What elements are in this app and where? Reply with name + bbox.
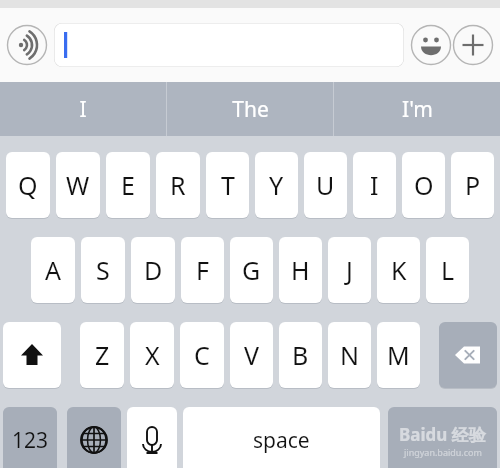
staticText: Y — [269, 168, 284, 202]
button[interactable]: J — [328, 237, 371, 303]
button[interactable]: G — [230, 237, 273, 303]
button[interactable]: Shift — [3, 322, 61, 388]
button[interactable]: F — [181, 237, 224, 303]
button[interactable]: C — [180, 322, 224, 388]
button[interactable]: Q — [6, 152, 50, 218]
staticText: Q — [18, 168, 38, 202]
staticText: T — [221, 168, 235, 202]
staticText: I — [370, 168, 379, 202]
button[interactable]: X — [130, 322, 174, 388]
staticText: J — [346, 253, 353, 287]
button[interactable]: Return — [388, 407, 497, 468]
button[interactable]: space — [183, 407, 380, 468]
button[interactable]: N — [328, 322, 371, 388]
button[interactable]: V — [230, 322, 273, 388]
button[interactable]: Z — [80, 322, 124, 388]
staticText: D — [144, 253, 163, 287]
button[interactable]: S — [81, 237, 125, 303]
staticText: G — [242, 253, 261, 287]
staticText: R — [170, 168, 186, 202]
button[interactable]: I'm — [334, 82, 500, 136]
staticText: The — [232, 95, 269, 124]
button[interactable]: H — [279, 237, 322, 303]
staticText: 123 — [12, 426, 49, 455]
button[interactable]: L — [426, 237, 469, 303]
button[interactable]: U — [304, 152, 347, 218]
button[interactable]: Change keyboard — [67, 407, 121, 468]
button[interactable]: E — [106, 152, 150, 218]
staticText: I'm — [402, 95, 433, 124]
button[interactable] — [54, 23, 404, 67]
button[interactable]: K — [377, 237, 420, 303]
button[interactable]: Delete — [439, 322, 497, 388]
button[interactable]: I — [0, 82, 166, 136]
button[interactable]: P — [451, 152, 494, 218]
button[interactable]: T — [206, 152, 249, 218]
button[interactable]: R — [156, 152, 200, 218]
staticText: W — [66, 168, 90, 202]
staticText: N — [340, 338, 360, 372]
staticText: space — [253, 426, 310, 455]
button[interactable]: Emoji — [410, 24, 452, 66]
staticText: U — [316, 168, 335, 202]
button[interactable]: Dictation — [127, 407, 177, 468]
staticText: Z — [95, 338, 110, 372]
button[interactable]: D — [131, 237, 175, 303]
button[interactable]: Numbers — [3, 407, 57, 468]
staticText: C — [194, 338, 210, 372]
button[interactable]: I — [353, 152, 396, 218]
staticText: X — [145, 338, 160, 372]
staticText: S — [96, 253, 110, 287]
button[interactable]: O — [402, 152, 445, 218]
button[interactable]: A — [31, 237, 75, 303]
staticText: E — [121, 168, 135, 202]
staticText: P — [465, 168, 481, 202]
staticText: K — [391, 253, 407, 287]
button[interactable]: Y — [255, 152, 298, 218]
button[interactable]: Voice message — [6, 24, 48, 66]
staticText: O — [414, 168, 434, 202]
button[interactable]: B — [279, 322, 322, 388]
staticText: F — [196, 253, 209, 287]
button[interactable]: M — [377, 322, 420, 388]
button[interactable]: Add attachment — [452, 24, 494, 66]
staticText: H — [291, 253, 310, 287]
staticText: V — [244, 338, 260, 372]
staticText: B — [292, 338, 309, 372]
staticText: Baidu 经验 — [399, 423, 486, 446]
staticText: I — [79, 95, 87, 124]
staticText: A — [45, 253, 61, 287]
staticText: M — [387, 338, 410, 372]
staticText: jingyan.baidu.com — [404, 446, 482, 458]
staticText: L — [441, 253, 455, 287]
button[interactable]: The — [167, 82, 333, 136]
button[interactable]: W — [56, 152, 100, 218]
